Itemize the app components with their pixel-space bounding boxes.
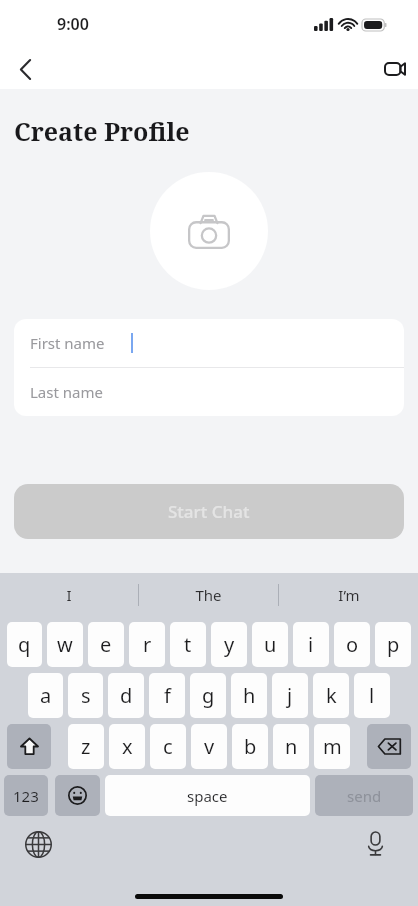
staticText: Create Profile (14, 114, 190, 148)
button[interactable]: r (129, 622, 165, 667)
staticText: y (224, 631, 235, 658)
button[interactable]: w (47, 622, 83, 667)
staticText: v (204, 733, 215, 760)
button[interactable]: Shift (7, 724, 51, 769)
staticText: z (81, 733, 91, 760)
button[interactable]: h (231, 673, 267, 718)
staticText: o (346, 631, 359, 658)
button[interactable]: t (170, 622, 206, 667)
staticText: p (387, 631, 400, 658)
button[interactable]: n (273, 724, 309, 769)
button[interactable]: Start Chat (14, 484, 404, 539)
button[interactable]: l (354, 673, 390, 718)
staticText: t (184, 631, 192, 658)
button[interactable]: s (68, 673, 103, 718)
button[interactable]: d (108, 673, 144, 718)
staticText: f (164, 682, 171, 709)
staticText: q (18, 631, 31, 658)
button[interactable]: b (232, 724, 268, 769)
button[interactable]: First name (14, 319, 404, 367)
button[interactable]: k (313, 673, 349, 718)
staticText: r (143, 631, 152, 658)
button[interactable]: p (375, 622, 411, 667)
button[interactable]: Back (6, 50, 44, 88)
staticText: n (285, 733, 298, 760)
staticText: k (326, 682, 337, 709)
staticText: Start Chat (168, 500, 250, 523)
button[interactable]: j (272, 673, 308, 718)
button[interactable]: 123 (4, 775, 48, 816)
button[interactable]: space (105, 775, 310, 816)
staticText: send (347, 786, 382, 806)
button[interactable]: o (334, 622, 370, 667)
button[interactable]: Last name (14, 368, 404, 416)
button[interactable]: The (139, 573, 278, 617)
staticText: First name (30, 333, 105, 353)
staticText: i (308, 631, 314, 658)
button[interactable]: i (293, 622, 329, 667)
button[interactable]: Video call (376, 50, 414, 88)
staticText: l (369, 682, 375, 709)
button[interactable]: e (88, 622, 124, 667)
button[interactable]: Emoji (55, 775, 100, 816)
button[interactable]: f (149, 673, 185, 718)
button[interactable]: g (190, 673, 226, 718)
button[interactable]: x (109, 724, 145, 769)
staticText: I’m (338, 585, 360, 605)
staticText: c (163, 733, 173, 760)
staticText: 9:00 (57, 13, 89, 35)
button[interactable]: z (68, 724, 104, 769)
staticText: b (244, 733, 257, 760)
staticText: e (100, 631, 112, 658)
button[interactable]: m (314, 724, 350, 769)
button[interactable]: c (150, 724, 186, 769)
staticText: I (66, 585, 72, 605)
button[interactable]: Dictate (357, 826, 393, 862)
staticText: a (40, 682, 52, 709)
staticText: w (57, 631, 73, 658)
button[interactable]: Change keyboard language (20, 826, 56, 862)
button[interactable]: send (315, 775, 413, 816)
staticText: h (243, 682, 256, 709)
button[interactable]: q (7, 622, 42, 667)
staticText: 123 (13, 786, 39, 806)
staticText: d (120, 682, 133, 709)
staticText: m (323, 733, 342, 760)
button[interactable]: Backspace (367, 724, 411, 769)
staticText: g (202, 682, 215, 709)
staticText: The (195, 585, 222, 605)
staticText: x (122, 733, 133, 760)
staticText: u (264, 631, 277, 658)
staticText: j (287, 682, 293, 709)
button[interactable]: y (211, 622, 247, 667)
button[interactable]: u (252, 622, 288, 667)
staticText: s (81, 682, 91, 709)
button[interactable]: I (0, 573, 138, 617)
button[interactable]: Add profile photo (150, 172, 268, 290)
button[interactable]: I’m (279, 573, 418, 617)
staticText: space (187, 786, 228, 806)
staticText: Last name (30, 382, 103, 402)
button[interactable]: v (191, 724, 227, 769)
button[interactable]: a (28, 673, 63, 718)
